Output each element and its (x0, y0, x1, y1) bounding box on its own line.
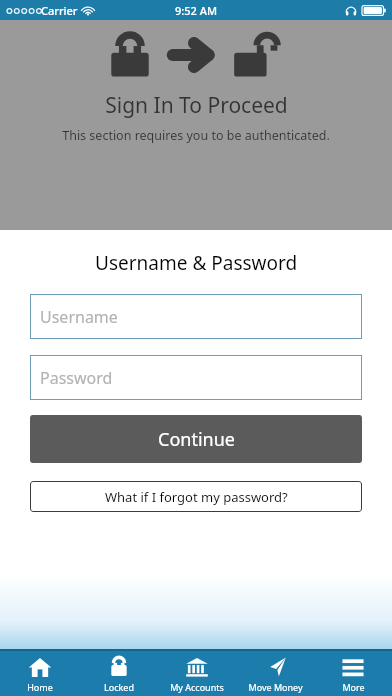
staticText: My Accounts (170, 681, 224, 693)
button[interactable]: Home (0, 651, 79, 696)
staticText: This section requires you to be authenti… (62, 127, 330, 144)
button[interactable]: More (314, 651, 392, 696)
staticText: Password (40, 367, 113, 389)
button[interactable]: My Accounts (158, 651, 236, 696)
staticText: More (342, 681, 365, 693)
button[interactable]: Username (30, 294, 362, 339)
staticText: Username (40, 306, 118, 328)
staticText: Username & Password (95, 250, 298, 276)
button[interactable]: Locked (79, 651, 158, 696)
button[interactable]: Move Money (236, 651, 314, 696)
button[interactable]: Password (30, 355, 362, 400)
button[interactable]: Continue (30, 415, 362, 463)
staticText: Move Money (248, 681, 303, 693)
staticText: Sign In To Proceed (105, 91, 288, 120)
staticText: 9:52 AM (175, 3, 218, 18)
button[interactable]: What if I forgot my password? (30, 481, 362, 512)
staticText: Continue (158, 427, 235, 452)
staticText: Carrier (41, 3, 78, 18)
staticText: What if I forgot my password? (105, 488, 288, 506)
staticText: Home (27, 681, 53, 693)
staticText: Locked (104, 681, 134, 693)
